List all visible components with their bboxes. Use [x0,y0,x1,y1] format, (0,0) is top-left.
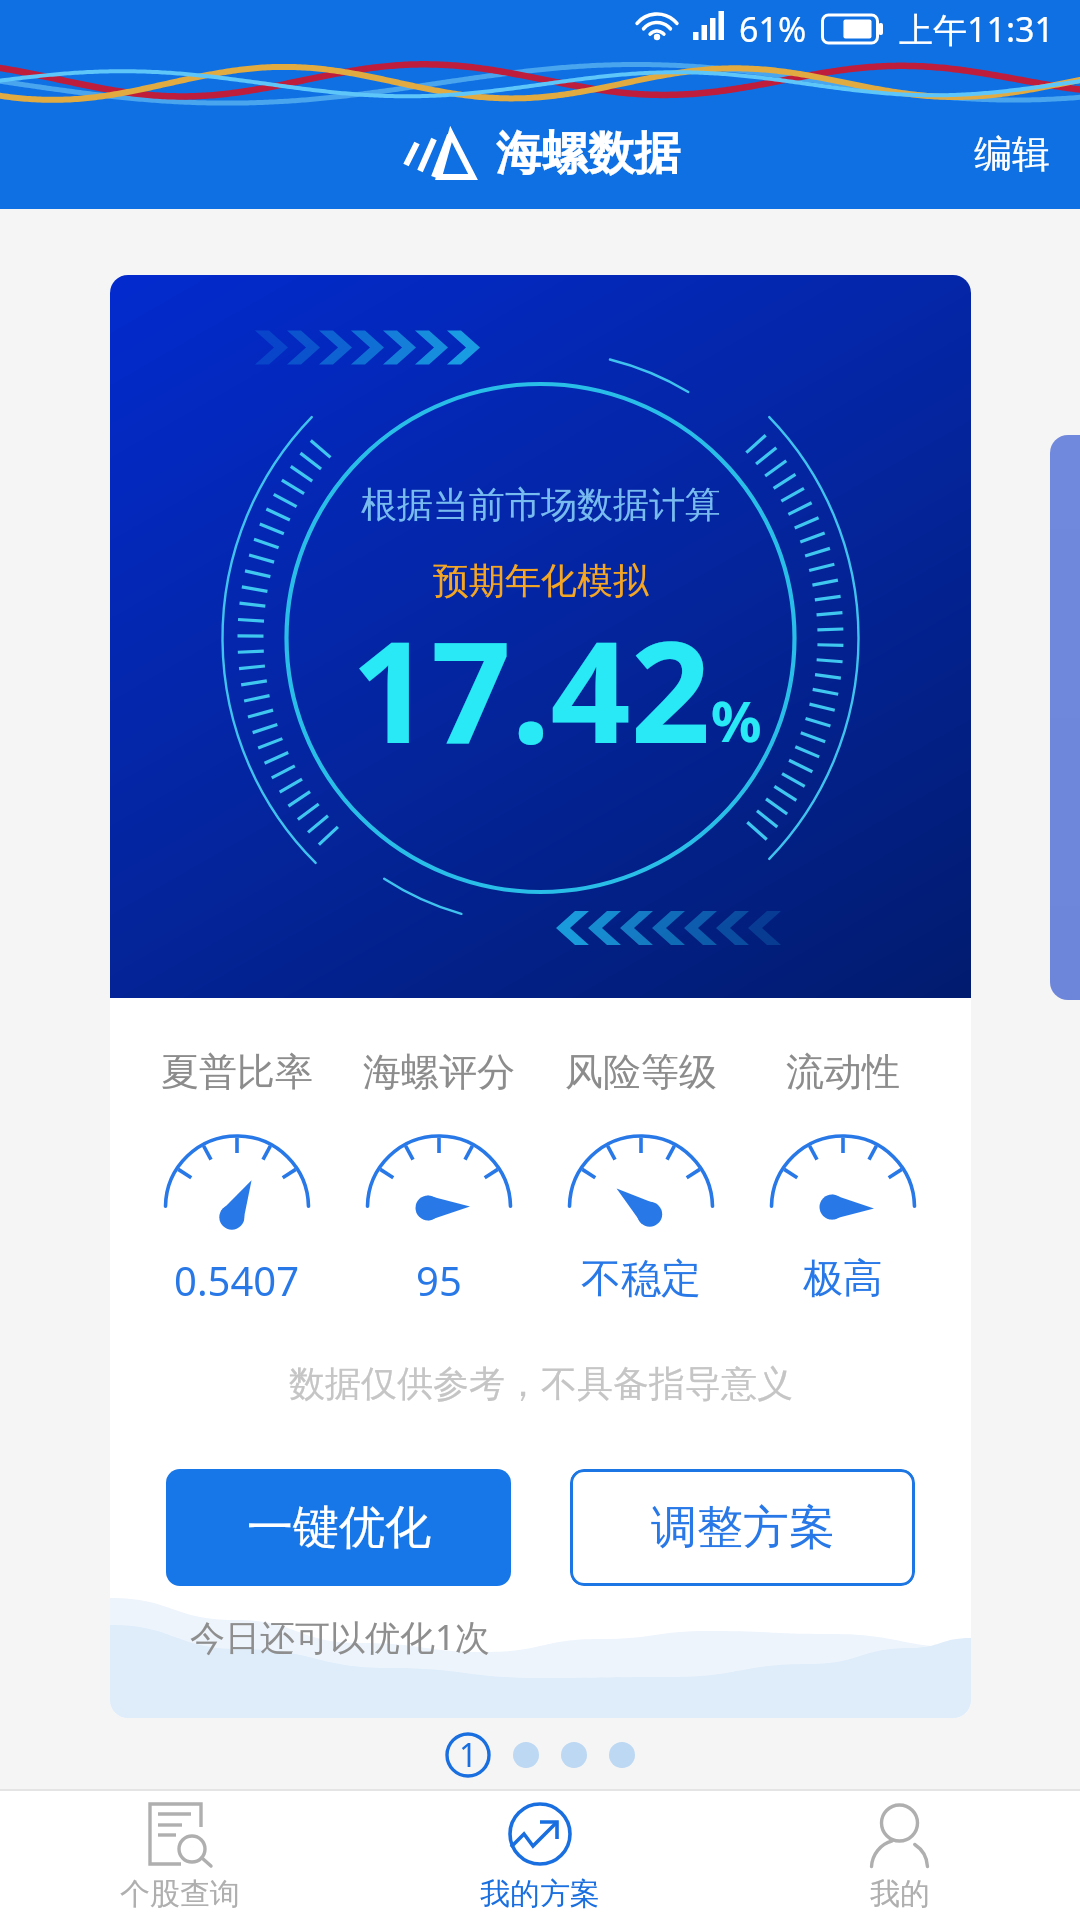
button[interactable]: Stock search [0,1791,360,1920]
button[interactable]: Profile [720,1791,1080,1920]
staticText: 预期年化模拟 [433,558,649,603]
staticText: 根据当前市场数据计算 [361,482,721,527]
staticText: 海螺数据 [496,125,680,183]
button[interactable]: 编辑 [944,99,1080,209]
staticText: 1 [459,1733,478,1777]
staticText: 调整方案 [651,1499,835,1557]
staticText: 17.42 [351,593,711,784]
staticText: 上午11:31 [899,6,1054,52]
staticText: 我的方案 [480,1875,600,1913]
staticText: 我的 [870,1875,930,1913]
staticText: 流动性 [786,1048,900,1096]
staticText: 个股查询 [120,1875,240,1913]
staticText: 风险等级 [565,1048,717,1096]
staticText: 61% [739,6,807,52]
button[interactable]: 1 [445,1732,491,1778]
staticText: 编辑 [974,130,1050,178]
button[interactable]: My plan [360,1791,720,1920]
staticText: 极高 [803,1253,883,1303]
staticText: 夏普比率 [161,1048,313,1096]
button[interactable]: 调整方案 [570,1469,915,1586]
staticText: 海螺评分 [363,1048,515,1096]
staticText: 一键优化 [247,1499,431,1557]
staticText: 数据仅供参考，不具备指导意义 [289,1361,793,1406]
button[interactable]: 根据当前市场数据计算 [110,275,971,1718]
button[interactable]: 一键优化 [166,1469,511,1586]
staticText: 今日还可以优化1次 [190,1613,491,1661]
staticText: 95 [416,1253,462,1307]
staticText: 不稳定 [581,1253,701,1303]
staticText: 0.5407 [174,1253,300,1307]
staticText: % [711,682,762,758]
